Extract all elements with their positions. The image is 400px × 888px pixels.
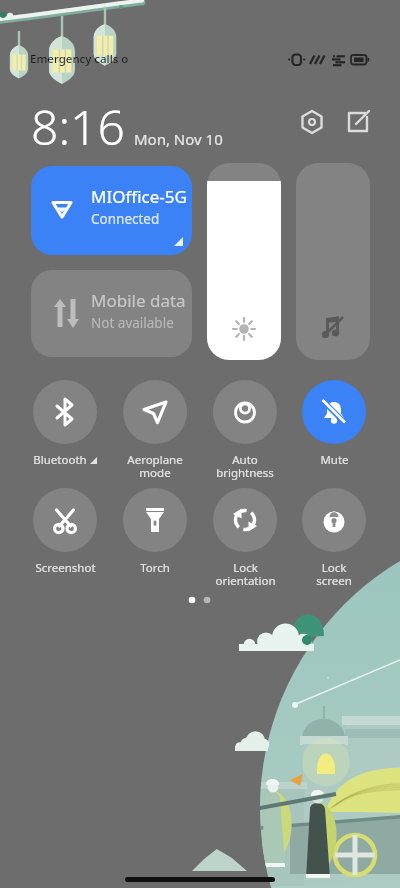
- button[interactable]: Brightness: [207, 163, 281, 360]
- staticText: Auto brightness: [216, 452, 274, 481]
- staticText: Emergency calls o: [30, 51, 129, 67]
- button[interactable]: Torch: [110, 488, 200, 576]
- staticText: Lock orientation: [215, 560, 276, 589]
- staticText: Mon, Nov 10: [134, 129, 223, 149]
- button[interactable]: Lock orientation: [200, 488, 290, 589]
- staticText: Mobile data: [91, 289, 186, 312]
- staticText: Torch: [140, 560, 170, 576]
- button[interactable]: Bluetooth: [20, 380, 110, 468]
- staticText: 8:16: [31, 94, 125, 159]
- staticText: Screenshot: [35, 560, 96, 576]
- staticText: Connected: [91, 210, 160, 228]
- button[interactable]: Mobile data: [31, 270, 192, 357]
- button[interactable]: MIOffice-5G: [31, 166, 192, 255]
- staticText: Lock screen: [316, 560, 352, 589]
- button[interactable]: Lock screen: [289, 488, 379, 589]
- button[interactable]: Auto brightness: [200, 380, 290, 481]
- button[interactable]: Aeroplane mode: [110, 380, 200, 481]
- staticText: MIOffice-5G: [91, 185, 187, 208]
- button[interactable]: Volume: [296, 163, 370, 360]
- button[interactable]: Edit: [344, 108, 372, 136]
- button[interactable]: Settings: [298, 108, 326, 136]
- staticText: Bluetooth: [33, 452, 87, 468]
- button[interactable]: Mute: [289, 380, 379, 468]
- staticText: Mute: [320, 452, 349, 468]
- staticText: Aeroplane mode: [127, 452, 183, 481]
- staticText: Not available: [91, 314, 174, 332]
- button[interactable]: Screenshot: [20, 488, 110, 576]
